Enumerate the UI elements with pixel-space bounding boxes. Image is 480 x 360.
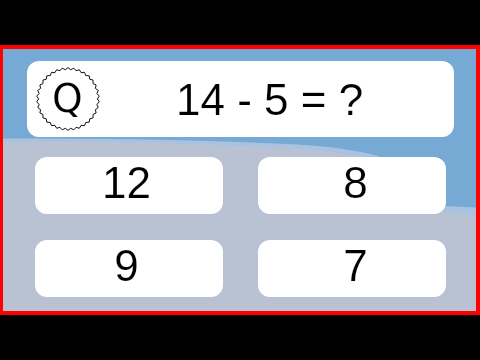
button[interactable]: 8: [258, 157, 446, 214]
staticText: 14 - 5 = ?: [176, 75, 364, 124]
staticText: 8: [343, 158, 368, 207]
button[interactable]: 9: [35, 240, 223, 297]
staticText: 9: [114, 241, 139, 290]
staticText: 12: [102, 158, 151, 207]
staticText: Q: [52, 76, 83, 121]
other: Question badge: [36, 67, 100, 131]
button[interactable]: 12: [35, 157, 223, 214]
staticText: 7: [343, 241, 368, 290]
button[interactable]: Question badge: [27, 61, 454, 137]
button[interactable]: 7: [258, 240, 446, 297]
